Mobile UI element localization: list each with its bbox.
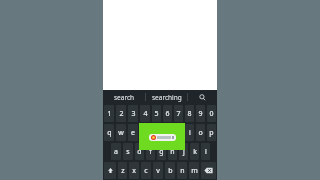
staticText: k (193, 147, 197, 157)
button[interactable]: u (174, 124, 183, 141)
button[interactable]: y (163, 124, 172, 141)
button[interactable]: j (179, 143, 188, 160)
staticText: z (121, 166, 125, 176)
button[interactable]: 6 (163, 105, 172, 122)
staticText: c (144, 166, 148, 176)
button[interactable]: 1 (104, 105, 114, 122)
staticText: v (156, 166, 160, 176)
staticText: searching (152, 93, 182, 102)
button[interactable]: 5 (152, 105, 161, 122)
button[interactable]: e (128, 124, 138, 141)
button[interactable]: m (189, 162, 199, 179)
button[interactable]: z (118, 162, 127, 179)
staticText: q (107, 128, 112, 138)
staticText: 0 (209, 109, 214, 119)
staticText: 4 (143, 109, 148, 119)
button[interactable]: l (201, 143, 210, 160)
staticText: 9 (198, 109, 203, 119)
staticText: 8 (187, 109, 192, 119)
staticText: m (191, 166, 198, 176)
staticText: f (149, 147, 152, 157)
button[interactable] (139, 123, 185, 150)
button[interactable]: 7 (174, 105, 183, 122)
staticText: w (118, 128, 124, 138)
staticText: j (183, 147, 185, 157)
button[interactable]: i (185, 124, 194, 141)
staticText: 3 (131, 109, 136, 119)
button[interactable]: 4 (140, 105, 150, 122)
button[interactable]: c (141, 162, 151, 179)
staticText: 1 (107, 109, 112, 119)
button[interactable]: o (196, 124, 205, 141)
staticText: 2 (119, 109, 124, 119)
button[interactable]: q (104, 124, 114, 141)
button[interactable]: f (146, 143, 155, 160)
staticText: h (170, 147, 175, 157)
button[interactable]: Backspace (201, 162, 216, 179)
staticText: g (159, 147, 164, 157)
staticText: x (132, 166, 136, 176)
staticText: n (180, 166, 185, 176)
button[interactable]: v (153, 162, 163, 179)
staticText: b (168, 166, 173, 176)
staticText: y (166, 128, 170, 138)
button[interactable]: n (177, 162, 187, 179)
staticText: o (198, 128, 203, 138)
staticText: search (114, 93, 135, 102)
staticText: l (205, 147, 207, 157)
staticText: 7 (176, 109, 181, 119)
button[interactable]: x (129, 162, 139, 179)
staticText: 5 (154, 109, 159, 119)
button[interactable]: b (165, 162, 175, 179)
staticText: d (137, 147, 142, 157)
staticText: t (155, 128, 158, 138)
button[interactable]: w (116, 124, 126, 141)
button[interactable]: a (111, 143, 121, 160)
staticText: 6 (165, 109, 170, 119)
button[interactable]: Shift (104, 162, 116, 179)
button[interactable]: Search (188, 90, 217, 104)
staticText: e (131, 128, 135, 138)
button[interactable]: s (123, 143, 133, 160)
staticText: p (209, 128, 214, 138)
button[interactable]: h (168, 143, 177, 160)
button[interactable]: p (207, 124, 216, 141)
button[interactable]: search (103, 90, 145, 104)
button[interactable]: searching (146, 90, 187, 104)
button[interactable]: d (135, 143, 144, 160)
button[interactable]: t (152, 124, 161, 141)
button[interactable]: g (157, 143, 166, 160)
button[interactable]: 8 (185, 105, 194, 122)
staticText: s (126, 147, 130, 157)
button[interactable]: r (140, 124, 150, 141)
button[interactable]: 2 (116, 105, 126, 122)
staticText: i (189, 128, 191, 138)
button[interactable]: k (190, 143, 199, 160)
button[interactable]: 0 (207, 105, 216, 122)
staticText: a (114, 147, 118, 157)
button[interactable]: 3 (128, 105, 138, 122)
button[interactable]: 9 (196, 105, 205, 122)
